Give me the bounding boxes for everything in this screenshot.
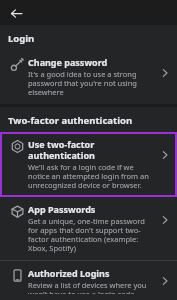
button[interactable]: Change password (0, 50, 177, 104)
staticText: We'll ask for a login code if we notice … (28, 162, 153, 191)
staticText: Review a list of devices where you won't… (28, 280, 153, 294)
button[interactable]: Back (5, 2, 27, 24)
staticText: Use two-factor authentication (28, 138, 153, 161)
staticText: Login (8, 32, 35, 45)
staticText: It's a good idea to use a strong passwor… (28, 69, 153, 98)
button[interactable]: Authorized Logins (0, 261, 177, 300)
staticText: Authorized Logins (28, 267, 110, 279)
button[interactable]: App Passwords (0, 197, 177, 260)
staticText: Get a unique, one-time password for apps… (28, 216, 153, 254)
staticText: Change password (28, 56, 108, 68)
staticText: Two-factor authentication (8, 114, 133, 127)
staticText: App Passwords (28, 203, 96, 215)
button[interactable]: Use two-factor authentication (0, 132, 177, 197)
